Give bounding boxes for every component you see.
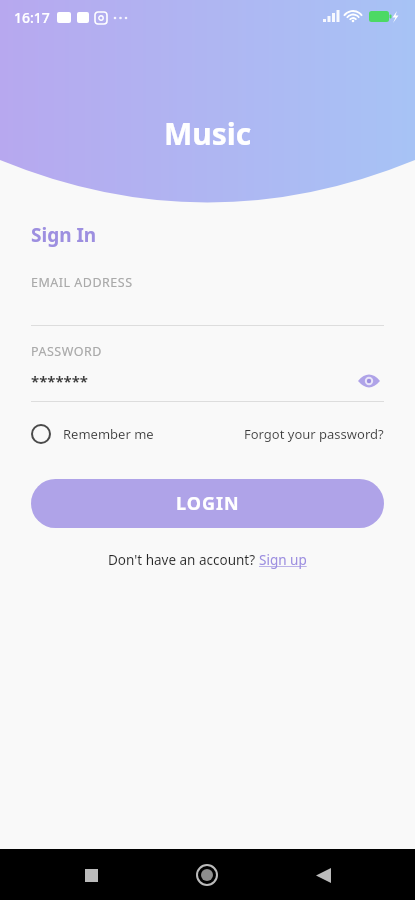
button[interactable]: Sign up	[259, 551, 307, 569]
staticText: *******	[31, 371, 88, 391]
button[interactable]: Show password	[354, 368, 384, 394]
staticText: Sign In	[31, 222, 97, 248]
button[interactable]: Home	[183, 851, 231, 899]
staticText: Remember me	[63, 425, 154, 443]
staticText: Don't have an account?	[108, 551, 259, 569]
staticText: EMAIL ADDRESS	[31, 274, 133, 291]
staticText: PASSWORD	[31, 343, 102, 360]
button[interactable]: Back	[299, 851, 347, 899]
staticText: Forgot your password?	[244, 425, 384, 443]
button[interactable]: Remember me	[31, 424, 154, 444]
button[interactable]: Recent apps	[67, 851, 115, 899]
staticText: LOGIN	[176, 491, 240, 516]
button[interactable]: Forgot your password?	[244, 425, 384, 443]
staticText: 16:17	[14, 8, 50, 27]
staticText: Sign up	[259, 551, 307, 569]
button[interactable]: LOGIN	[31, 479, 384, 528]
staticText: Music	[164, 113, 252, 154]
